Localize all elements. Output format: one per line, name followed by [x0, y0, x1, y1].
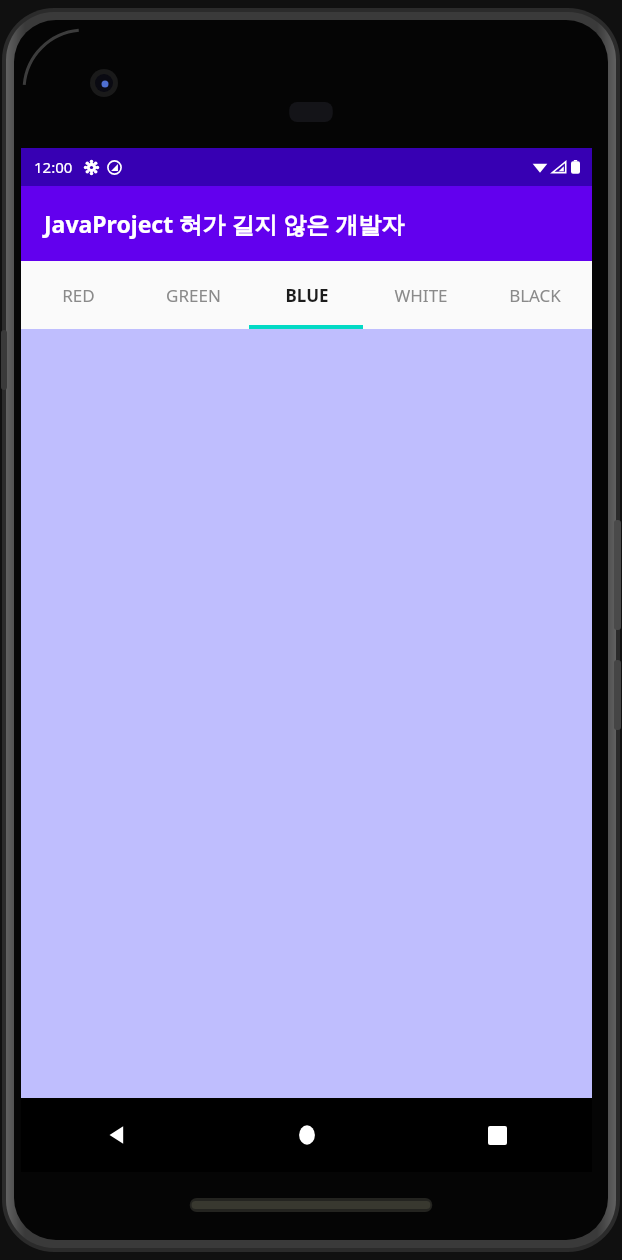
button[interactable]: Back: [21, 1098, 212, 1172]
button[interactable]: BLACK: [478, 261, 592, 329]
staticText: JavaProject 혀가 길지 않은 개발자: [44, 208, 405, 239]
staticText: 12:00: [34, 157, 73, 177]
staticText: BLACK: [509, 284, 561, 307]
button[interactable]: BLUE: [250, 261, 364, 329]
staticText: RED: [62, 284, 95, 307]
button[interactable]: WHITE: [364, 261, 478, 329]
button[interactable]: RED: [21, 261, 136, 329]
button[interactable]: Home: [212, 1098, 402, 1172]
button[interactable]: Recent apps: [402, 1098, 592, 1172]
staticText: WHITE: [394, 284, 448, 307]
staticText: BLUE: [285, 284, 329, 307]
button[interactable]: GREEN: [136, 261, 250, 329]
staticText: GREEN: [166, 284, 221, 307]
